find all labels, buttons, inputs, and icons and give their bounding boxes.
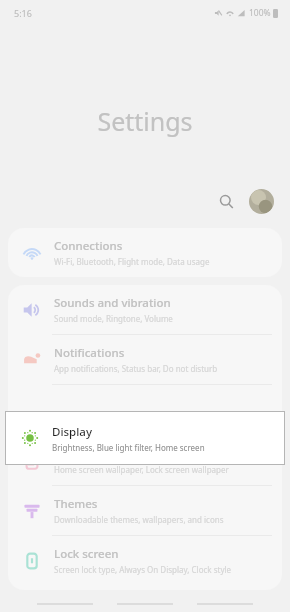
- staticText: Brightness, Blue light filter, Home scre…: [52, 442, 205, 453]
- staticText: Wi-Fi, Bluetooth, Flight mode, Data usag…: [54, 256, 210, 267]
- button[interactable]: Notifications: [8, 335, 282, 384]
- staticText: Settings: [0, 104, 290, 138]
- staticText: 100%: [249, 7, 271, 19]
- staticText: Themes: [54, 496, 98, 512]
- staticText: Lock screen: [54, 546, 119, 562]
- staticText: Screen lock type, Always On Display, Clo…: [54, 564, 232, 575]
- staticText: Home screen wallpaper, Lock screen wallp…: [54, 464, 229, 475]
- staticText: Sounds and vibration: [54, 295, 171, 311]
- staticText: Downloadable themes, wallpapers, and ico…: [54, 514, 224, 525]
- button[interactable]: Display: [6, 412, 284, 464]
- button[interactable]: Connections: [8, 228, 282, 277]
- button[interactable]: Search: [211, 186, 241, 216]
- staticText: Notifications: [54, 345, 125, 361]
- button[interactable]: Wallpaper: [8, 436, 282, 485]
- staticText: Display: [52, 424, 92, 440]
- staticText: Sound mode, Ringtone, Volume: [54, 313, 173, 324]
- button[interactable]: Lock screen: [8, 536, 282, 585]
- staticText: Connections: [54, 238, 123, 254]
- button[interactable]: Themes: [8, 486, 282, 535]
- button[interactable]: Sounds and vibration: [8, 285, 282, 334]
- staticText: Wallpaper: [54, 446, 110, 462]
- staticText: App notifications, Status bar, Do not di…: [54, 363, 218, 374]
- button[interactable]: Profile: [249, 189, 274, 214]
- button[interactable]: Display: [6, 412, 284, 464]
- staticText: 5:16: [14, 7, 32, 19]
